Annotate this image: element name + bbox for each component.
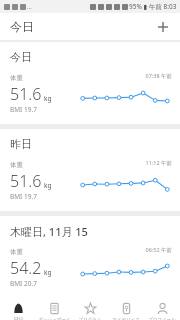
staticText: 11:12 午前: [78, 159, 172, 167]
staticText: 今日: [10, 50, 32, 64]
staticText: 日記: [14, 317, 23, 320]
staticText: 今日: [10, 19, 34, 34]
staticText: 51.6: [10, 170, 42, 192]
staticText: プログラム: [78, 317, 102, 320]
staticText: 51.6: [10, 83, 42, 105]
staticText: 07:38 午前: [78, 72, 172, 80]
button[interactable]: プログラム: [72, 298, 108, 320]
staticText: BMI 20.7: [10, 279, 37, 288]
button[interactable]: 体重: [0, 246, 180, 294]
staticText: …: [27, 3, 32, 11]
button[interactable]: プロフィール: [144, 298, 180, 320]
staticText: プロフィール: [148, 317, 176, 320]
staticText: 体重: [10, 74, 23, 82]
button[interactable]: Add: [152, 16, 174, 38]
staticText: ダッシュボード: [38, 317, 71, 320]
staticText: 体重: [10, 248, 23, 256]
staticText: 体重: [10, 161, 23, 169]
staticText: kg: [44, 94, 52, 103]
button[interactable]: 日記: [0, 298, 36, 320]
staticText: 54.2: [10, 257, 42, 279]
staticText: 06:52 午前: [78, 246, 172, 254]
button[interactable]: 体重: [0, 72, 180, 120]
staticText: 木曜日, 11月 15: [10, 224, 88, 239]
staticText: 95% ▮ 午前 8:03: [129, 2, 177, 11]
staticText: kg: [44, 181, 52, 190]
button[interactable]: ダッシュボード: [36, 298, 72, 320]
staticText: マイデバイス: [112, 317, 140, 320]
staticText: BMI 19.7: [10, 105, 37, 114]
staticText: kg: [44, 268, 52, 277]
staticText: 昨日: [10, 137, 32, 151]
staticText: BMI 19.7: [10, 192, 37, 201]
button[interactable]: マイデバイス: [108, 298, 144, 320]
button[interactable]: 体重: [0, 159, 180, 207]
